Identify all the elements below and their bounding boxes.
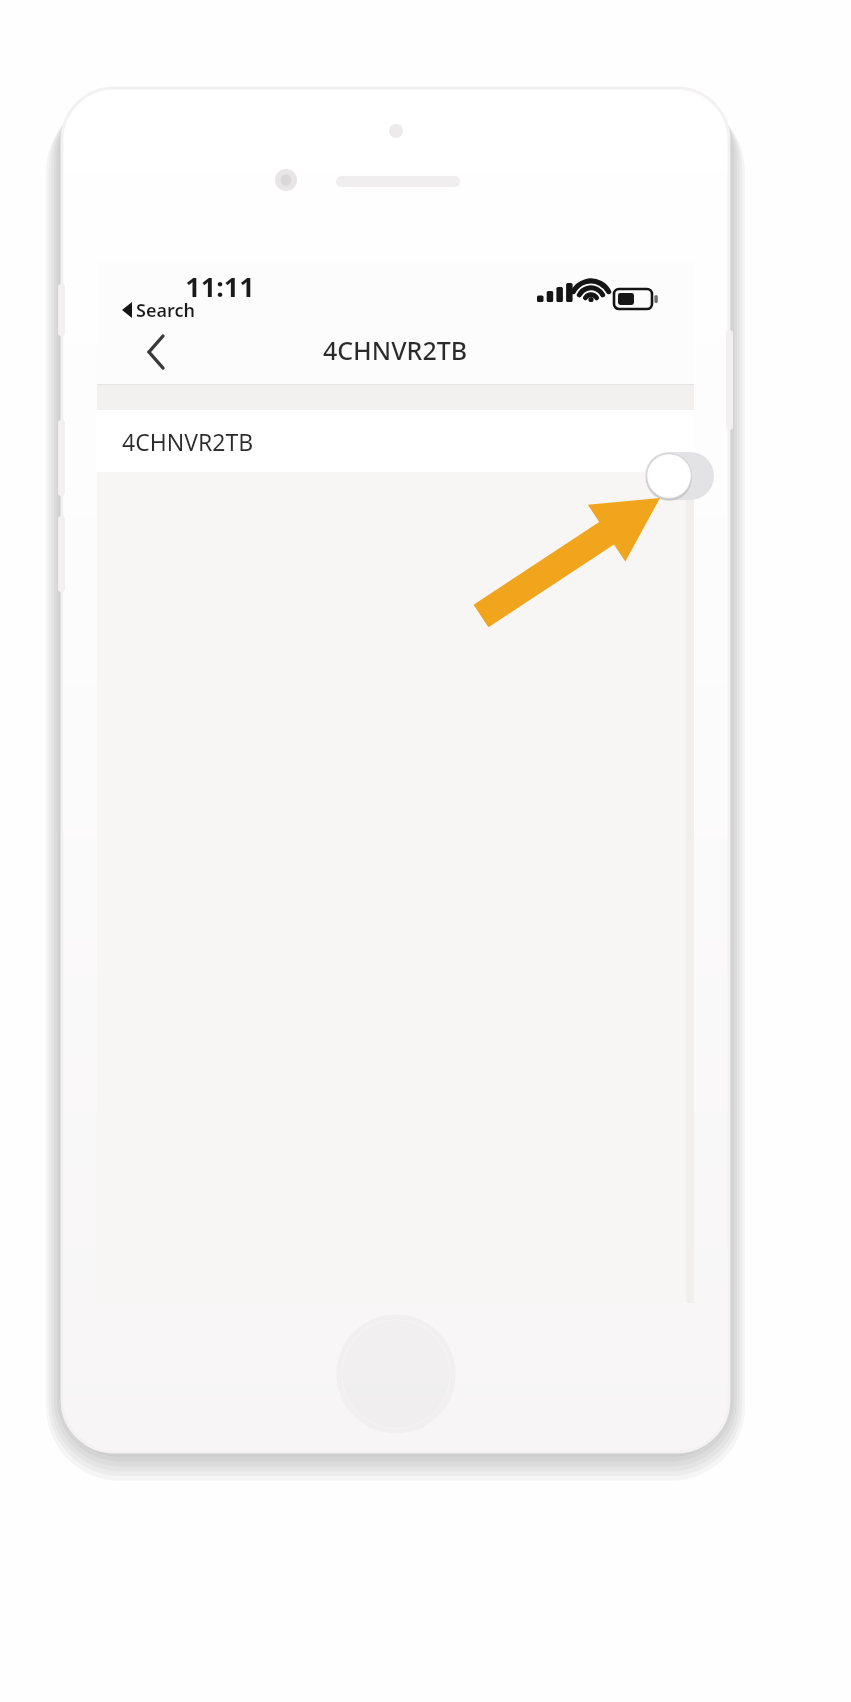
staticText: 11:11 [150, 268, 290, 305]
staticText: Search [136, 298, 286, 323]
button[interactable]: Back [118, 322, 194, 382]
button[interactable]: Back to Search [112, 294, 242, 326]
button[interactable] [97, 410, 694, 472]
button[interactable]: Home [334, 1312, 458, 1436]
staticText: 4CHNVR2TB [122, 426, 482, 457]
button[interactable]: 4CHNVR2TB toggle, off [640, 448, 720, 504]
staticText: 4CHNVR2TB [215, 333, 575, 367]
